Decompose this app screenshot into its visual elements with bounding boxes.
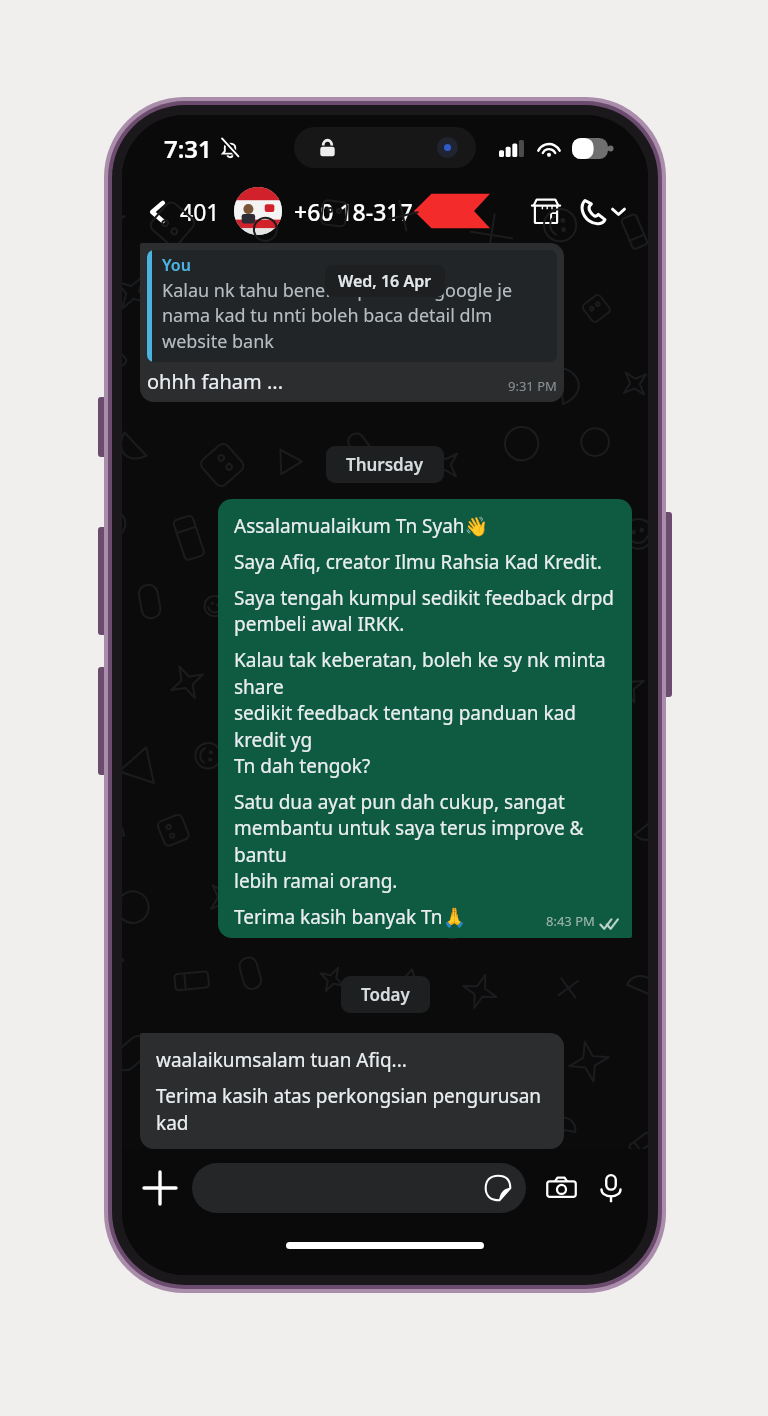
- staticText: sedikit feedback tentang panduan kad kre…: [234, 700, 619, 753]
- staticText: pembeli awal IRKK.: [234, 611, 405, 637]
- staticText: You: [162, 254, 191, 276]
- staticText: Satu dua ayat pun dah cukup, sangat: [234, 789, 565, 815]
- button[interactable]: +60 18-317: [234, 187, 524, 235]
- staticText: 8:43 PM: [546, 912, 595, 930]
- staticText: Kalau tak keberatan, boleh ke sy nk mint…: [234, 647, 619, 700]
- button[interactable]: Assalamualaikum Tn Syah👋: [218, 499, 632, 938]
- button[interactable]: Camera: [538, 1165, 584, 1211]
- staticText: 9:31 PM: [508, 377, 557, 395]
- button[interactable]: Business catalog: [524, 189, 568, 233]
- button[interactable]: Attach: [136, 1164, 184, 1212]
- button[interactable]: Voice message: [588, 1165, 634, 1211]
- staticText: Assalamualaikum Tn Syah👋: [234, 513, 489, 539]
- staticText: 7:31: [164, 132, 212, 165]
- staticText: nama kad tu nnti boleh baca detail dlm w…: [162, 303, 547, 354]
- button[interactable]: Message: [192, 1163, 526, 1213]
- button[interactable]: Call: [578, 191, 626, 232]
- staticText: 401: [180, 196, 220, 227]
- staticText: Tn dah tengok?: [234, 753, 371, 779]
- staticText: lebih ramai orang.: [234, 868, 398, 894]
- staticText: +60 18-317: [294, 196, 413, 227]
- button[interactable]: You: [140, 243, 564, 402]
- button[interactable]: Back to chats, 401 unread: [142, 192, 224, 231]
- staticText: Today: [361, 983, 410, 1006]
- staticText: Thursday: [346, 453, 424, 476]
- staticText: Saya tengah kumpul sedikit feedback drpd: [234, 585, 615, 611]
- staticText: membantu untuk saya terus improve & bant…: [234, 815, 619, 868]
- staticText: Wed, 16 Apr: [338, 270, 432, 292]
- staticText: ohhh faham ...: [147, 368, 284, 395]
- staticText: waalaikumsalam tuan Afiq...: [156, 1047, 407, 1073]
- staticText: Saya Afiq, creator Ilmu Rahsia Kad Kredi…: [234, 549, 602, 575]
- button[interactable]: waalaikumsalam tuan Afiq...: [140, 1033, 564, 1149]
- staticText: Kalau nk tahu benefit ap google je: [162, 278, 513, 303]
- staticText: Terima kasih atas perkongsian pengurusan…: [156, 1083, 551, 1136]
- staticText: Terima kasih banyak Tn🙏: [234, 904, 467, 930]
